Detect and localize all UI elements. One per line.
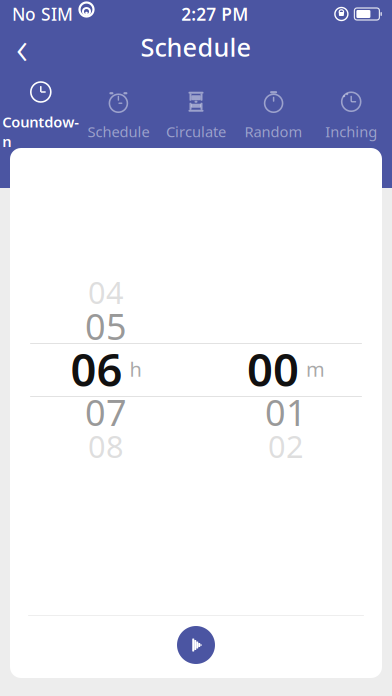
staticText: Schedule [140,30,251,64]
staticText: 05 [85,302,127,350]
button[interactable]: Circulate [157,85,235,145]
staticText: Countdown [2,112,79,151]
staticText: 2:27 PM [181,2,248,25]
staticText: Random [245,122,303,141]
staticText: Schedule [87,122,149,141]
staticText: 07 [85,388,127,436]
button[interactable]: Start [167,616,225,674]
button[interactable]: Back [0,27,44,67]
staticText: 01 [265,388,307,436]
staticText: m [306,356,325,382]
staticText: 06 [70,339,122,399]
staticText: Circulate [166,122,226,141]
staticText: 00 [247,339,299,399]
staticText: 08 [88,426,124,466]
staticText: 02 [268,426,304,466]
staticText: ‹ [16,17,28,77]
staticText: Inching [325,122,377,141]
button[interactable]: Inching [312,85,390,145]
button[interactable]: Random [235,85,312,145]
staticText: h [129,356,141,382]
button[interactable]: Schedule [80,85,157,145]
staticText: No SIM [12,2,73,25]
button[interactable]: Countdown [2,75,80,155]
staticText: 04 [88,272,124,312]
